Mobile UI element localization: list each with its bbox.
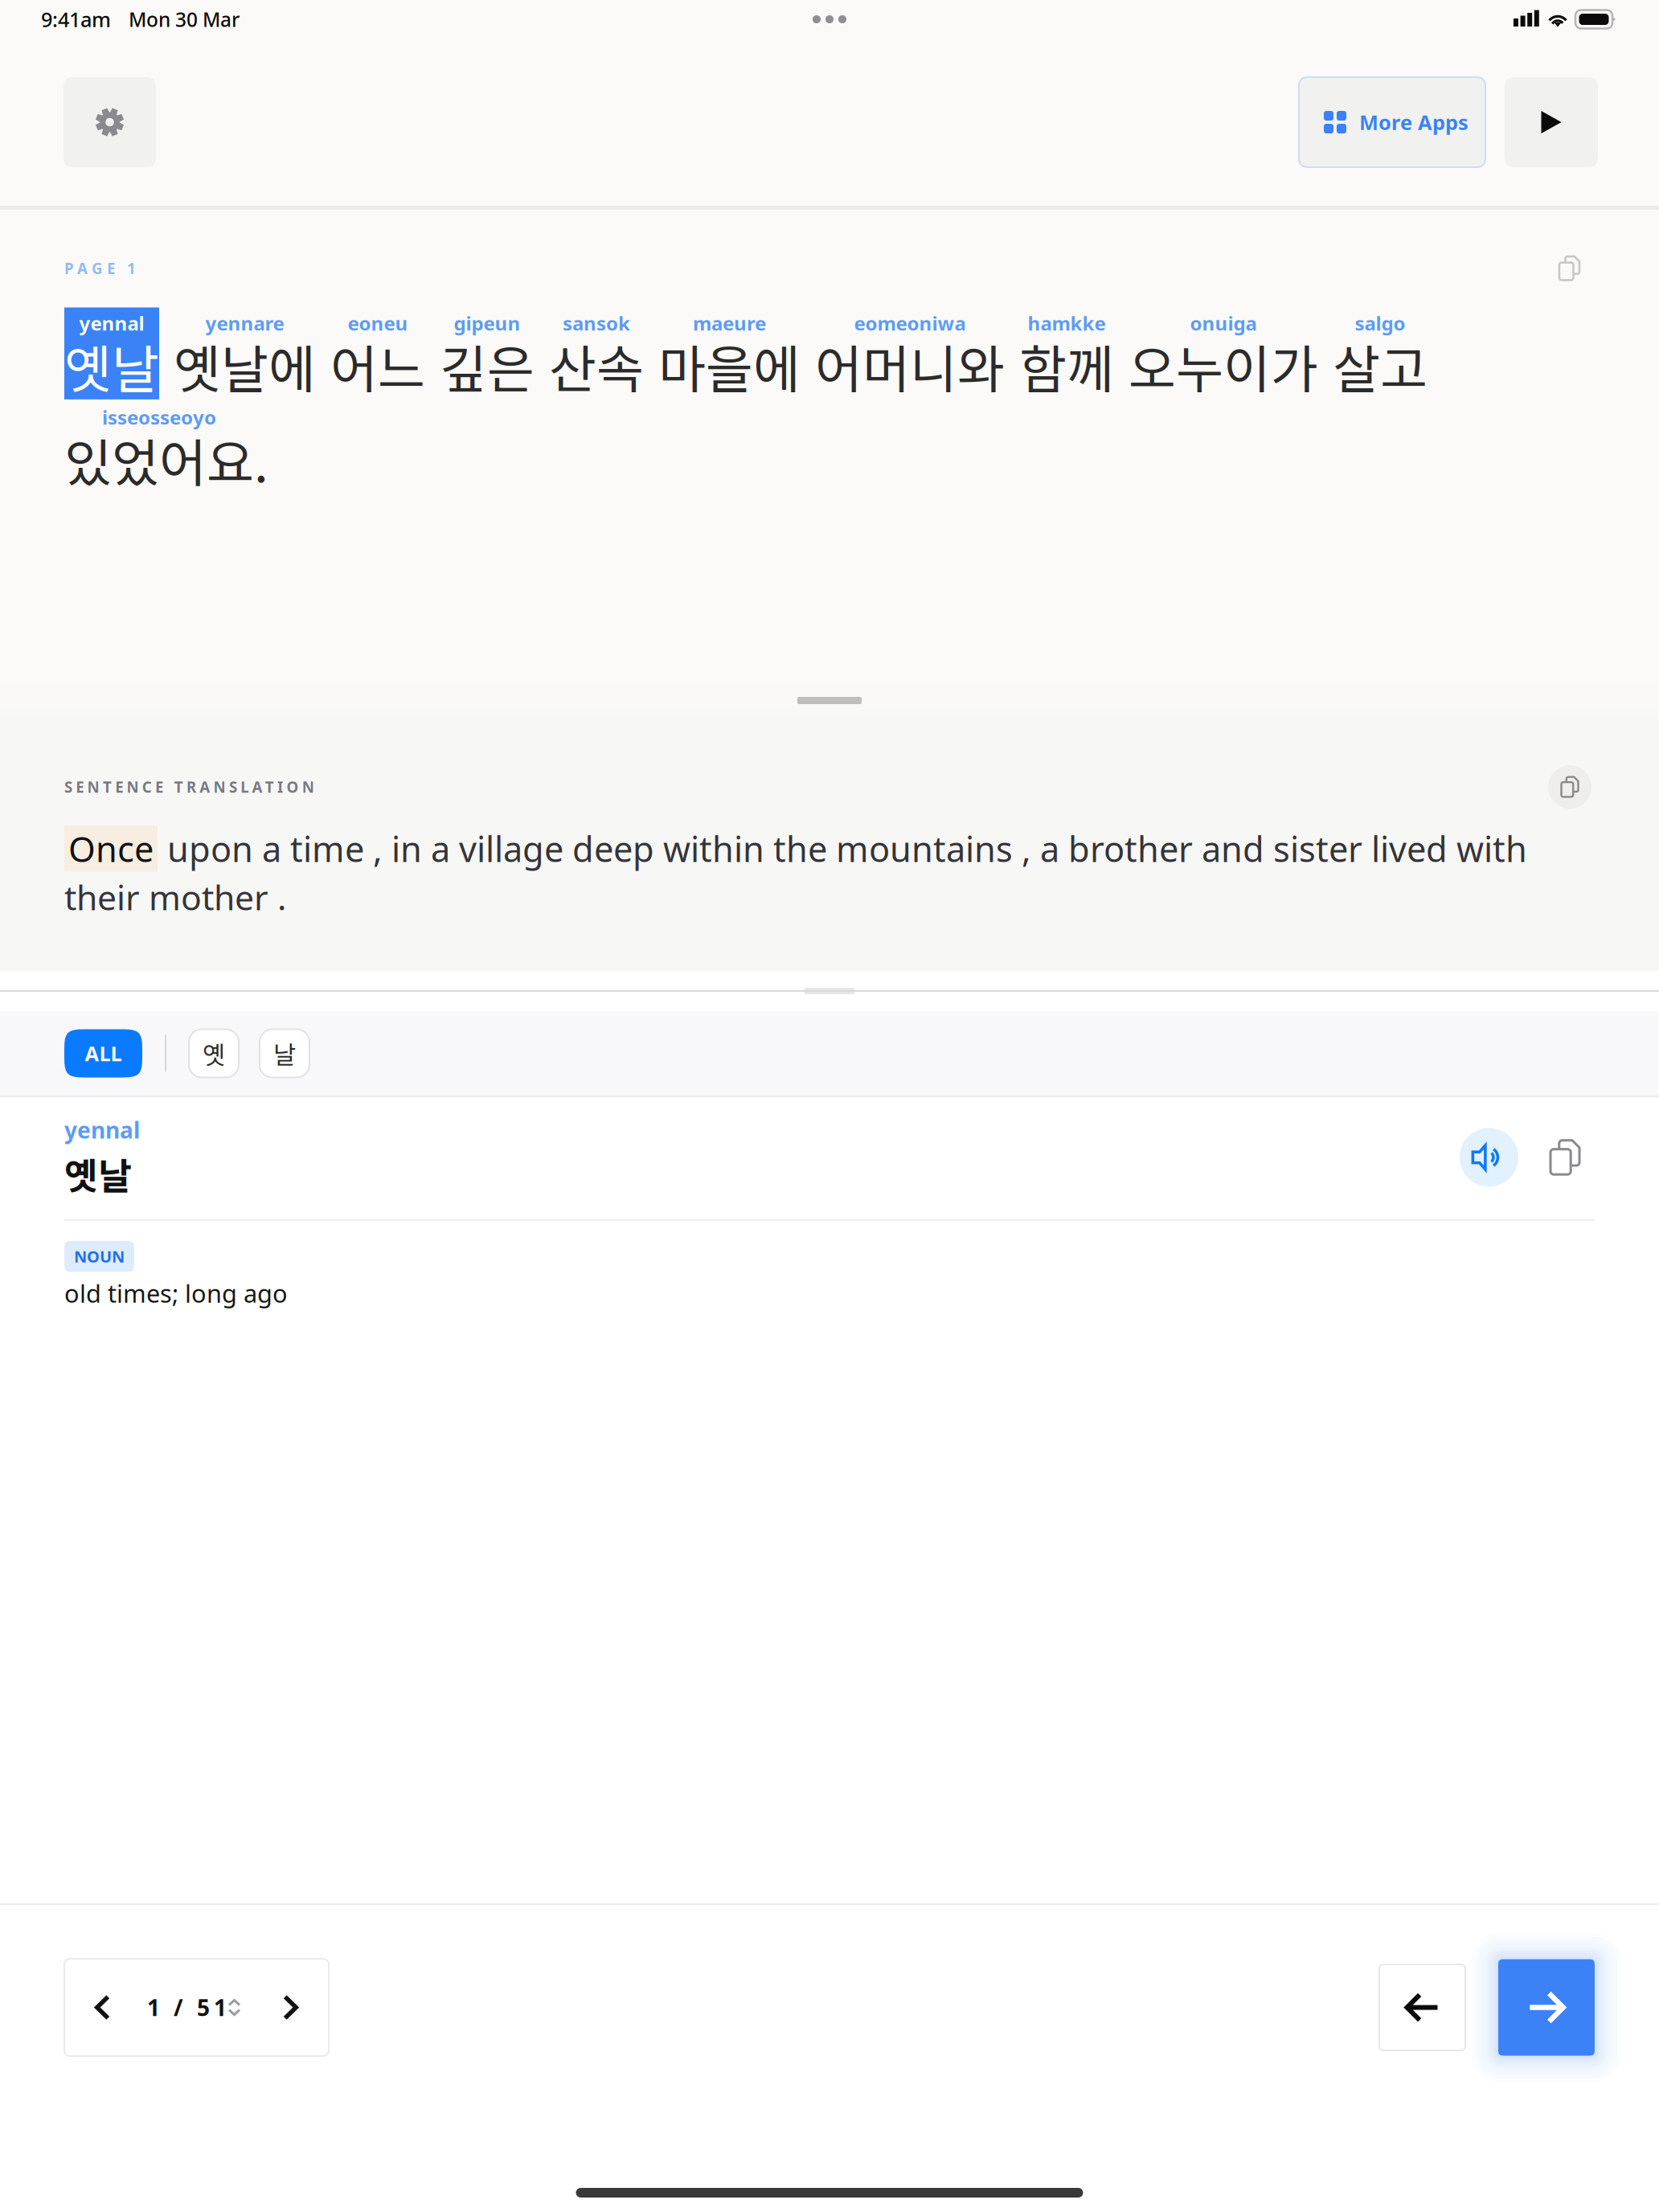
staticText: SENTENCE TRANSLATION [64,777,314,797]
staticText: onuiga [1190,310,1257,336]
staticText: sansok [563,310,630,336]
staticText: More Apps [1359,109,1469,136]
button[interactable]: Next page [283,1979,298,2036]
staticText: yennal [64,1115,140,1145]
button[interactable]: Forward [1498,1959,1595,2056]
button[interactable]: Copy sentence [1559,256,1579,280]
button[interactable]: Back [1379,1964,1465,2050]
staticText: 옛날 [64,1147,132,1200]
staticText: isseosseoyo [102,404,216,430]
staticText: Once [68,825,154,872]
staticText: 산속 [549,336,644,396]
staticText: 어느 [330,336,425,396]
staticText: yennare [205,310,284,336]
staticText: ALL [85,1040,122,1067]
staticText: 함께 [1019,336,1114,396]
staticText: 있었어요 [64,430,254,490]
staticText: . [254,430,268,490]
staticText: their mother . [64,874,286,920]
staticText: salgo [1355,310,1405,336]
staticText: PAGE 1 [64,258,136,278]
staticText: eomeoniwa [854,310,966,336]
staticText: 어머니와 [815,336,1005,396]
staticText: 마을에 [658,336,801,396]
staticText: gipeun [454,310,520,336]
staticText: 1 / 51 [147,1992,227,2022]
button[interactable]: Settings [63,77,156,167]
button[interactable]: 옛 [189,1029,239,1077]
staticText: 깊은 [440,336,535,396]
button[interactable]: 날 [260,1029,309,1077]
staticText: 옛 [203,1036,225,1071]
staticText: eoneu [348,310,408,336]
staticText: old times; long ago [64,1277,288,1309]
staticText: 오누이가 [1129,336,1318,396]
staticText: hamkke [1028,310,1106,336]
staticText: Mon 30 Mar [129,6,240,32]
button[interactable]: Copy word [1550,1140,1579,1174]
staticText: 날 [273,1036,296,1071]
staticText: 옛날 [64,336,159,396]
staticText: upon a time , in a village deep within t… [167,825,1527,872]
button[interactable]: Previous page [95,1979,110,2036]
button[interactable]: Play [1505,77,1598,167]
staticText: yennal [79,310,144,336]
staticText: NOUN [74,1246,125,1267]
button[interactable]: More Apps [1299,77,1485,167]
staticText: 살고 [1333,336,1428,396]
staticText: maeure [693,310,766,336]
staticText: 9:41am [41,6,111,33]
button[interactable]: ALL [64,1029,142,1077]
staticText: 옛날에 [174,336,316,396]
button[interactable]: Copy translation [1548,765,1591,809]
button[interactable]: Play pronunciation [1460,1128,1518,1187]
